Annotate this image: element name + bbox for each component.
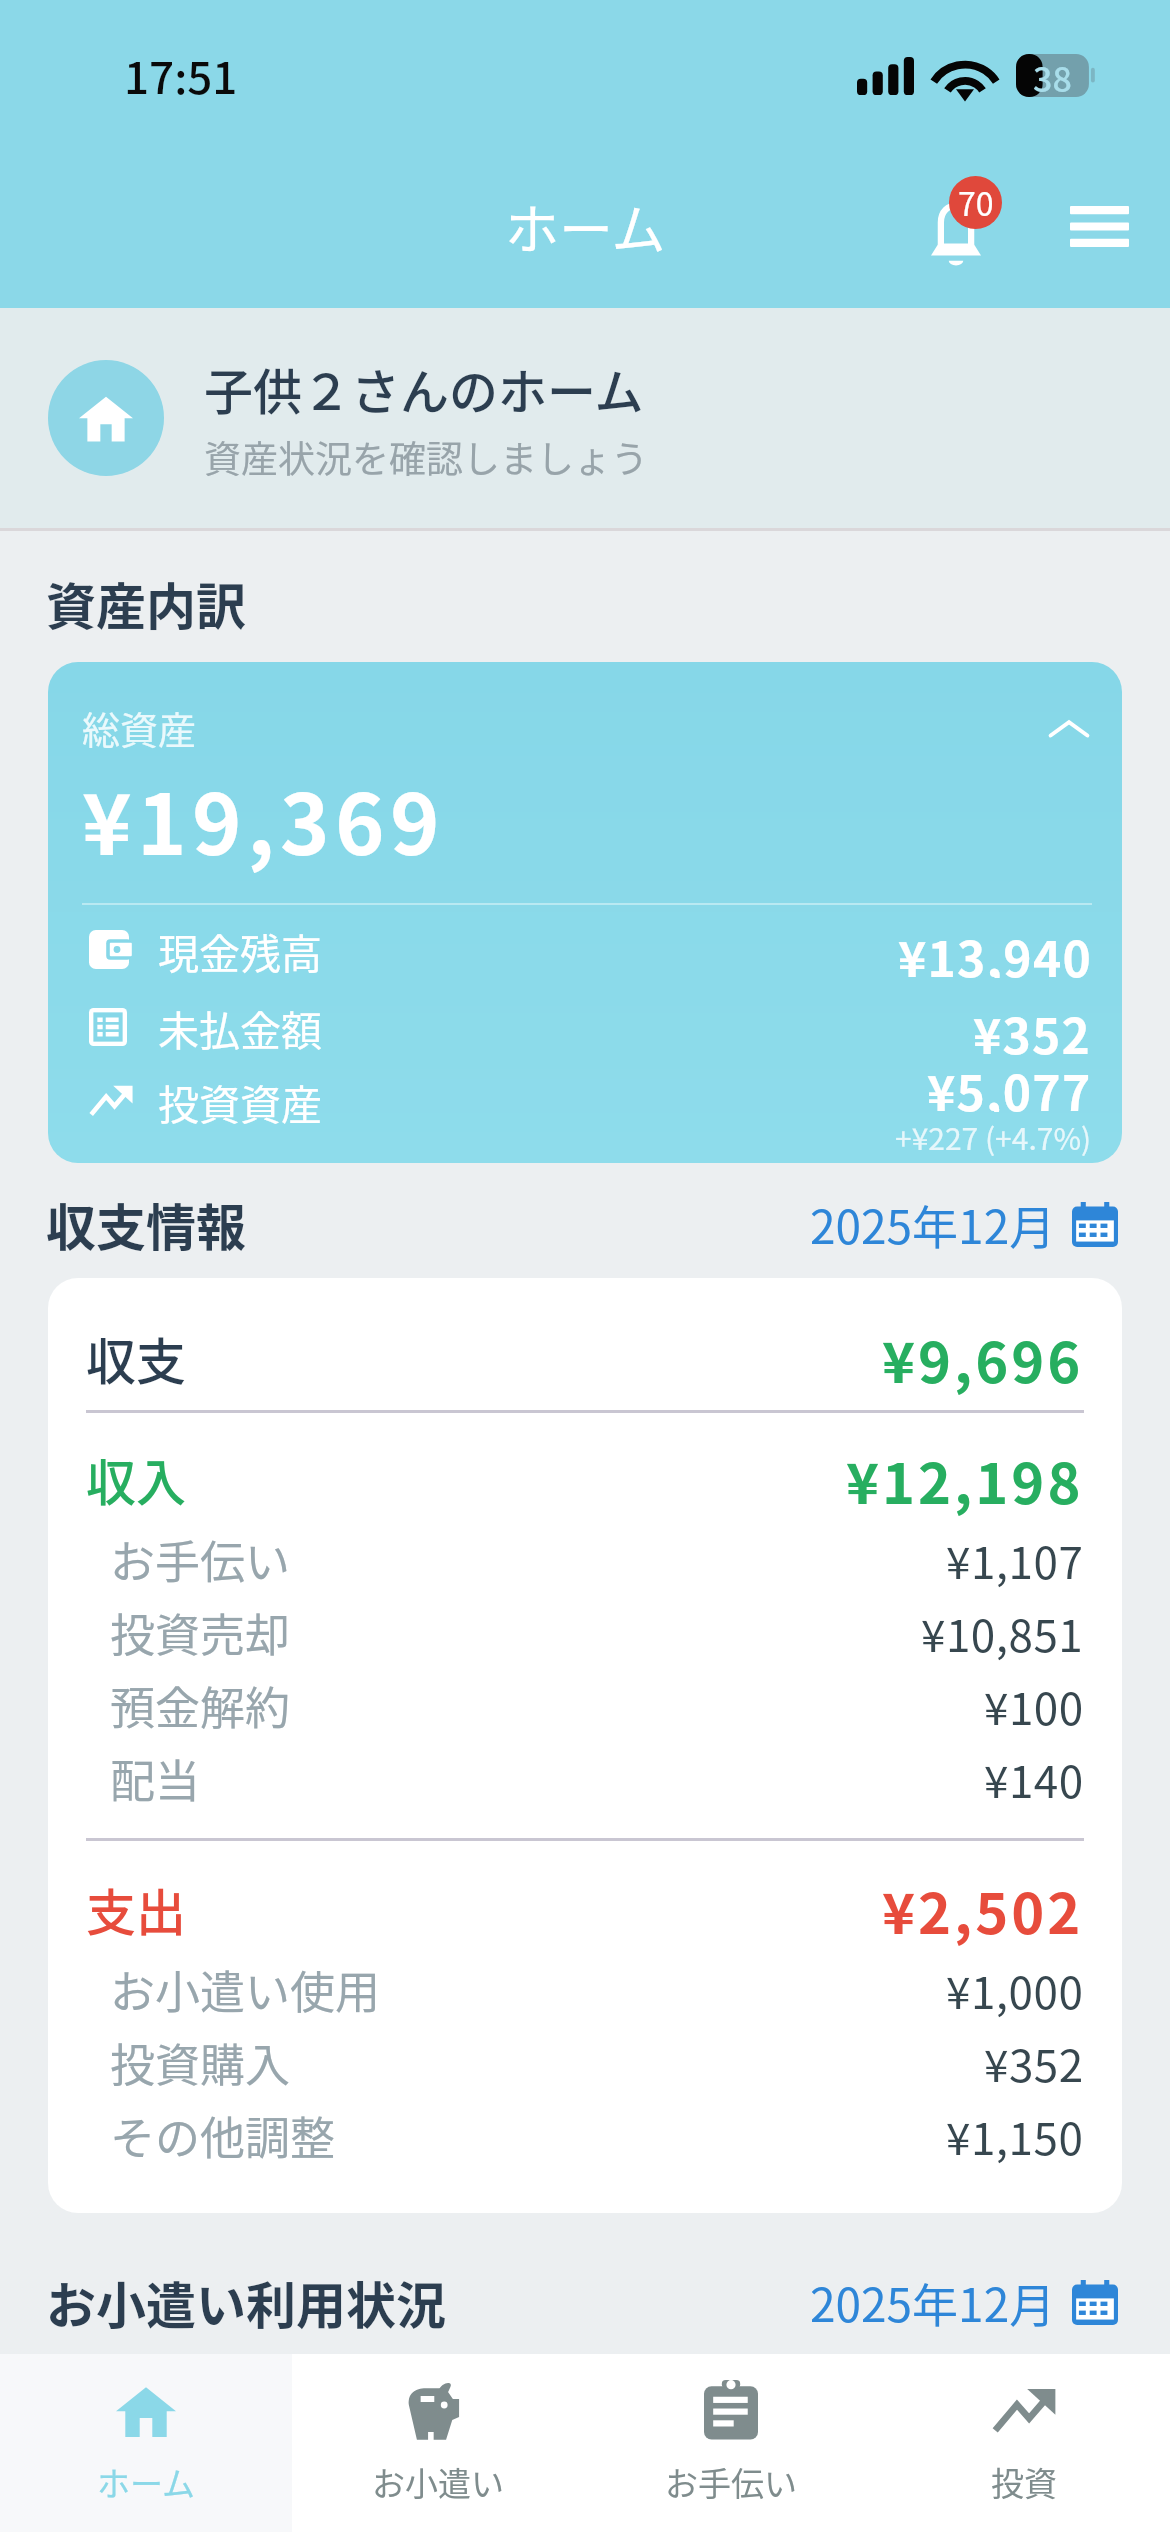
staticText: 収入 [86,1443,186,1515]
staticText: 38 [1033,53,1072,96]
staticText: お小遣い使用 [110,1957,381,2022]
button[interactable]: 2025年12月 [810,1191,1118,1258]
staticText: 支出 [86,1873,186,1945]
staticText: お手伝い [665,2458,797,2506]
staticText: 預金解約 [110,1673,291,1738]
staticText: その他調整 [110,2103,336,2168]
staticText: 収支情報 [46,1188,246,1260]
staticText: ¥13,940 [898,921,1092,978]
staticText: ¥5,077 [927,1055,1092,1112]
button[interactable]: お手伝い [584,2354,877,2532]
staticText: お小遣い利用状況 [46,2266,446,2338]
staticText: 投資 [991,2458,1057,2506]
staticText: 投資資産 [158,1072,322,1129]
button[interactable]: 総資産 [48,662,1122,1163]
staticText: お小遣い [372,2458,504,2506]
staticText: ホーム [505,187,666,265]
staticText: +¥227 (+4.7%) [895,1115,1092,1158]
button[interactable]: 2025年12月 [810,2269,1118,2336]
staticText: 17:51 [124,43,238,107]
staticText: 資産内訳 [46,567,246,639]
staticText: 70 [958,179,994,225]
staticText: 収支 [86,1322,186,1394]
staticText: ¥1,150 [946,2104,1084,2168]
staticText: ¥1,107 [946,1528,1084,1592]
staticText: 投資売却 [110,1600,291,1665]
staticText: ¥352 [973,998,1092,1055]
staticText: 配当 [110,1746,201,1811]
staticText: 未払金額 [158,998,322,1055]
button[interactable]: Menu [1049,178,1149,278]
staticText: 現金残高 [158,921,322,978]
staticText: 投資購入 [110,2030,291,2095]
staticText: お手伝い [110,1527,291,1592]
staticText: ¥12,198 [846,1439,1084,1520]
staticText: 子供２さんのホーム [204,353,644,424]
button[interactable]: 子供２さんのホーム [0,308,1170,528]
staticText: ホーム [97,2458,196,2506]
staticText: ¥1,000 [946,1958,1084,2022]
button[interactable]: ホーム [0,2354,292,2532]
staticText: ¥19,369 [82,758,446,880]
button[interactable]: 投資 [877,2354,1170,2532]
staticText: 総資産 [82,700,197,755]
staticText: ¥100 [984,1674,1084,1738]
staticText: ¥352 [984,2031,1084,2095]
button[interactable]: お小遣い [292,2354,584,2532]
button[interactable]: Notifications [912,172,1024,284]
staticText: ¥10,851 [921,1601,1084,1665]
staticText: 2025年12月 [810,1191,1056,1258]
staticText: ¥140 [984,1747,1084,1811]
staticText: ¥2,502 [882,1869,1084,1950]
staticText: ¥9,696 [882,1318,1084,1399]
staticText: 2025年12月 [810,2269,1056,2336]
staticText: 資産状況を確認しましょう [204,430,648,484]
